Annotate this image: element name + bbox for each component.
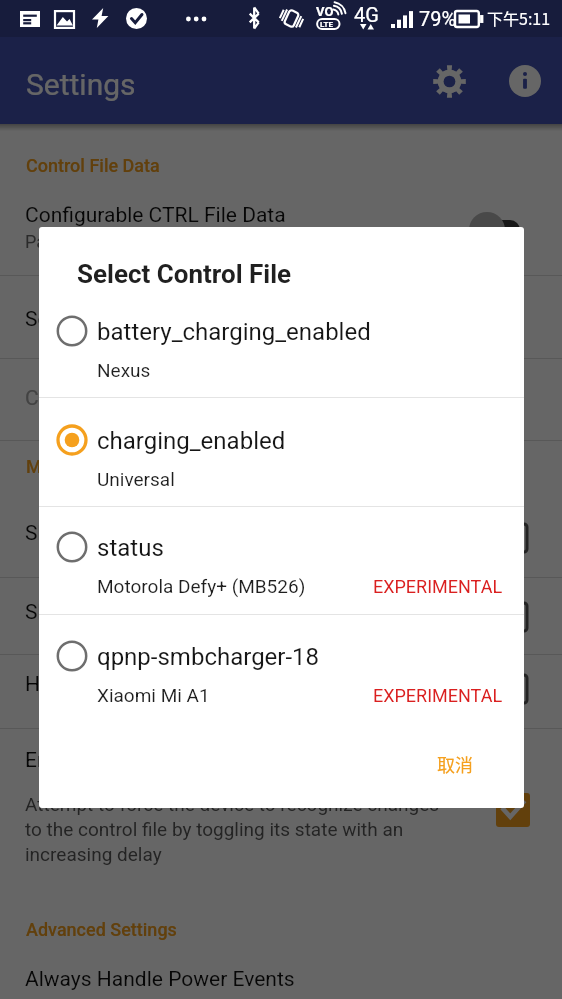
- button[interactable]: charging_enabled: [39, 398, 524, 502]
- staticText: Hide Launcher Icon: [25, 672, 206, 697]
- staticText: 4G: [354, 3, 379, 26]
- staticText: LTE: [320, 20, 333, 29]
- staticText: Custom Control File: [25, 386, 210, 411]
- staticText: Select Control File: [77, 259, 292, 289]
- staticText: 79%: [419, 7, 457, 30]
- staticText: Path to the control file: [25, 231, 202, 252]
- staticText: EXPERIMENTAL: [373, 576, 503, 597]
- staticText: 下午5:11: [487, 6, 551, 29]
- staticText: Misc Settings: [26, 456, 137, 477]
- staticText: Skip Battery Level Check: [25, 600, 254, 625]
- staticText: Always Handle Power Events: [25, 967, 295, 992]
- button[interactable]: Toggle: [497, 522, 529, 554]
- staticText: EXPERIMENTAL: [373, 685, 503, 706]
- staticText: Nexus: [97, 359, 151, 381]
- button[interactable]: Info: [501, 57, 549, 105]
- staticText: Configurable CTRL File Data: [25, 203, 286, 228]
- staticText: VO: [316, 4, 334, 19]
- staticText: increasing delay: [25, 843, 162, 865]
- staticText: qpnp-smbcharger-18: [97, 643, 320, 671]
- staticText: Show Notification Icon: [25, 521, 237, 546]
- staticText: Settings: [26, 67, 136, 102]
- staticText: Universal: [97, 468, 175, 490]
- button[interactable]: Toggle: [497, 673, 529, 705]
- staticText: Xiaomi Mi A1: [97, 684, 210, 706]
- button[interactable]: battery_charging_enabled: [39, 289, 524, 393]
- staticText: 取消: [437, 751, 473, 777]
- staticText: Enable Force Toggle: [25, 748, 214, 773]
- button[interactable]: Toggle: [497, 601, 529, 633]
- staticText: Select Control File: [25, 307, 195, 332]
- staticText: Control File Data: [26, 155, 160, 176]
- staticText: battery_charging_enabled: [97, 318, 371, 346]
- button[interactable]: Toggle: [496, 793, 530, 827]
- button[interactable]: Toggle: [482, 220, 520, 240]
- button[interactable]: 取消: [424, 742, 486, 786]
- staticText: Advanced Settings: [26, 919, 177, 940]
- staticText: status: [97, 534, 164, 562]
- staticText: Motorola Defy+ (MB526): [97, 575, 306, 597]
- staticText: Attempt to force the device to recognize…: [25, 793, 440, 815]
- staticText: to the control file by toggling its stat…: [25, 818, 404, 840]
- button[interactable]: status: [39, 505, 524, 609]
- button[interactable]: Settings: [425, 57, 473, 105]
- button[interactable]: qpnp-smbcharger-18: [39, 614, 524, 718]
- staticText: charging_enabled: [97, 427, 286, 455]
